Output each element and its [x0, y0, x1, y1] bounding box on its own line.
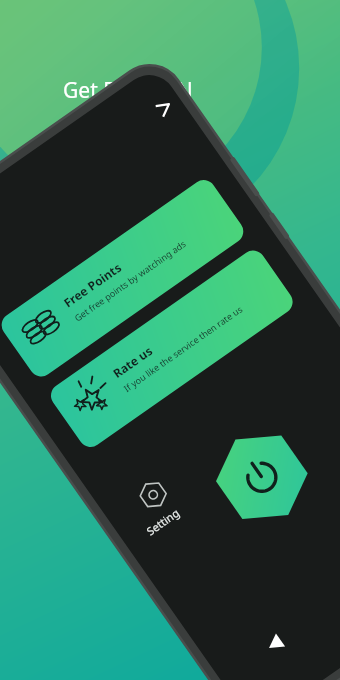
other: VPN promo — [0, 0, 340, 680]
